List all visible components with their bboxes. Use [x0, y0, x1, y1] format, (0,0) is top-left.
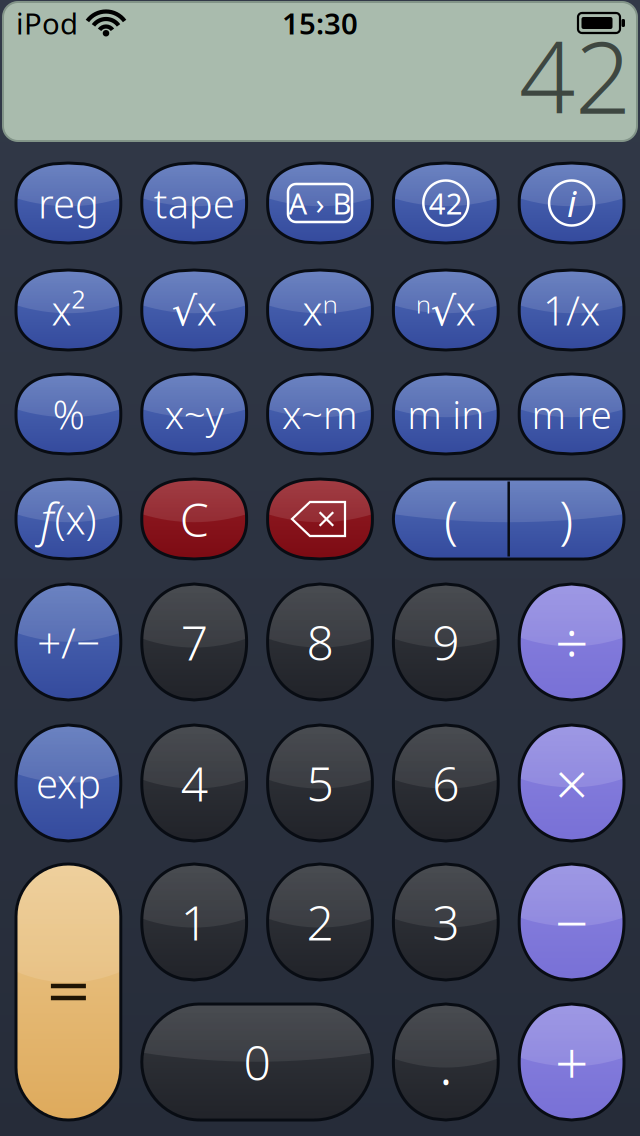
- staticText: C: [180, 488, 209, 550]
- staticText: m in: [407, 388, 484, 440]
- button[interactable]: i: [519, 163, 624, 243]
- button[interactable]: 1/x: [519, 270, 624, 350]
- staticText: 5: [306, 751, 333, 815]
- staticText: √x: [172, 283, 217, 336]
- staticText: 1: [181, 890, 208, 954]
- button[interactable]: ⁿ√x: [393, 270, 498, 350]
- button[interactable]: 42: [393, 163, 498, 243]
- button[interactable]: 3: [393, 864, 498, 980]
- button[interactable]: x²: [16, 270, 121, 350]
- button[interactable]: m re: [519, 374, 624, 454]
- staticText: ×: [555, 744, 588, 822]
- button[interactable]: +/−: [16, 584, 121, 700]
- staticText: 0: [244, 1030, 271, 1094]
- staticText: m re: [532, 388, 612, 440]
- staticText: xⁿ: [302, 283, 337, 336]
- button[interactable]: A › B: [268, 163, 372, 243]
- staticText: x~m: [282, 388, 358, 440]
- button[interactable]: reg: [16, 163, 121, 243]
- button[interactable]: √x: [142, 270, 247, 350]
- staticText: x~y: [165, 388, 224, 440]
- button[interactable]: ×: [519, 725, 624, 841]
- button[interactable]: .: [393, 1004, 498, 1120]
- button[interactable]: tape: [142, 163, 247, 243]
- staticText: ⁿ√x: [416, 283, 476, 336]
- button[interactable]: %: [16, 374, 121, 454]
- staticText: 42: [429, 183, 463, 222]
- button[interactable]: x~m: [268, 374, 372, 454]
- button[interactable]: x~y: [142, 374, 247, 454]
- staticText: .: [439, 1023, 453, 1101]
- button[interactable]: 1: [142, 864, 247, 980]
- staticText: iPod: [16, 3, 78, 42]
- button[interactable]: 5: [268, 725, 372, 841]
- button[interactable]: +: [519, 1004, 624, 1120]
- button[interactable]: 0: [142, 1004, 372, 1120]
- staticText: (: [444, 485, 458, 553]
- button[interactable]: [268, 479, 372, 559]
- button[interactable]: xⁿ: [268, 270, 372, 350]
- button[interactable]: [16, 864, 121, 1120]
- staticText: 42: [519, 10, 631, 141]
- staticText: %: [52, 387, 84, 440]
- staticText: 4: [181, 751, 208, 815]
- button[interactable]: (: [393, 479, 624, 559]
- staticText: f: [40, 489, 53, 549]
- button[interactable]: C: [142, 479, 247, 559]
- button[interactable]: 7: [142, 584, 247, 700]
- staticText: +: [555, 1023, 588, 1101]
- staticText: A › B: [288, 183, 351, 222]
- button[interactable]: −: [519, 864, 624, 980]
- staticText: +/−: [37, 614, 100, 670]
- button[interactable]: 2: [268, 864, 372, 980]
- staticText: 8: [306, 610, 333, 674]
- button[interactable]: m in: [393, 374, 498, 454]
- button[interactable]: 6: [393, 725, 498, 841]
- staticText: 6: [432, 751, 459, 815]
- staticText: 2: [306, 890, 333, 954]
- staticText: x²: [51, 283, 85, 336]
- staticText: 7: [181, 610, 208, 674]
- staticText: (x): [54, 492, 96, 545]
- staticText: exp: [36, 756, 101, 809]
- staticText: 1/x: [543, 283, 600, 336]
- staticText: i: [567, 179, 576, 227]
- staticText: 9: [432, 610, 459, 674]
- button[interactable]: exp: [16, 725, 121, 841]
- staticText: ÷: [555, 603, 588, 681]
- button[interactable]: ÷: [519, 584, 624, 700]
- button[interactable]: 8: [268, 584, 372, 700]
- staticText: −: [555, 883, 588, 961]
- staticText: ): [559, 485, 573, 553]
- staticText: 3: [432, 890, 459, 954]
- staticText: tape: [154, 176, 235, 229]
- button[interactable]: f: [16, 479, 121, 559]
- staticText: 15:30: [282, 3, 358, 42]
- button[interactable]: 9: [393, 584, 498, 700]
- staticText: reg: [38, 176, 99, 229]
- button[interactable]: 4: [142, 725, 247, 841]
